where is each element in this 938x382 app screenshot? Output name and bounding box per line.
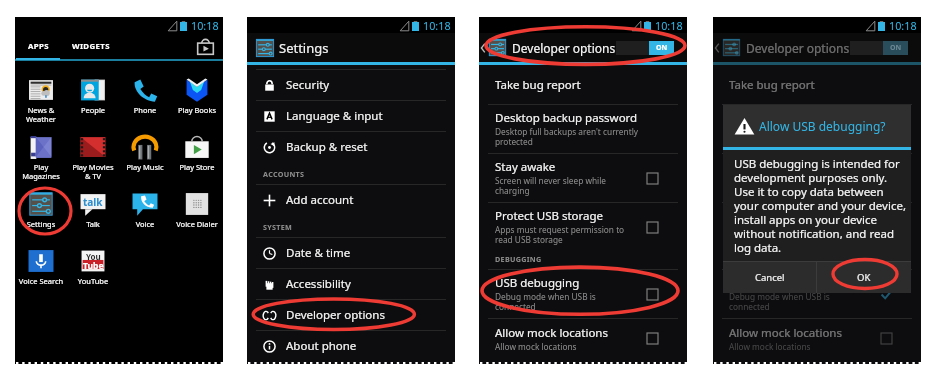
staticText: Developer options <box>746 40 850 56</box>
staticText: 10:18 <box>191 18 219 33</box>
button[interactable]: checkbox <box>881 289 892 300</box>
button[interactable]: Allow mock locations <box>479 319 687 358</box>
staticText: Tube <box>83 260 104 272</box>
button[interactable]: Accessibility <box>247 269 455 299</box>
staticText: 10:18 <box>655 18 683 33</box>
staticText: Desktop backup password <box>729 110 872 126</box>
button[interactable]: checkbox <box>647 289 658 300</box>
button[interactable]: Back <box>713 33 921 62</box>
staticText: Settings <box>15 219 67 229</box>
staticText: Take bug report <box>729 77 815 93</box>
staticText: News & Weather <box>15 105 67 125</box>
staticText: Allow mock locations <box>729 325 842 341</box>
button[interactable]: You <box>67 232 119 289</box>
staticText: Play Magazines <box>15 162 67 182</box>
button[interactable]: USB debugging <box>713 270 921 318</box>
button[interactable]: checkbox <box>647 222 658 233</box>
button[interactable]: Allow mock locations <box>713 319 921 358</box>
button[interactable]: Voice <box>119 175 171 232</box>
staticText: You <box>86 251 101 262</box>
button[interactable]: Back <box>713 33 721 62</box>
button[interactable]: Settings <box>15 175 67 232</box>
button[interactable]: Play Movies & TV <box>67 118 119 175</box>
staticText: USB debugging is intended for developmen… <box>734 156 909 255</box>
staticText: Debug mode when USB is connected <box>495 291 638 313</box>
button[interactable]: Play Books <box>171 61 223 118</box>
staticText: Play Books <box>171 105 223 115</box>
button[interactable]: Take bug report <box>713 65 921 104</box>
button[interactable]: talk <box>67 175 119 232</box>
button[interactable]: Add account <box>247 185 455 215</box>
staticText: Developer options <box>286 307 385 323</box>
button[interactable]: Voice Search <box>15 232 67 289</box>
button[interactable]: News & Weather <box>15 61 67 118</box>
staticText: Stay awake <box>495 159 556 175</box>
staticText: Add account <box>286 192 354 208</box>
button[interactable]: Desktop backup password <box>479 105 687 153</box>
button[interactable]: WIDGETS <box>61 33 120 59</box>
staticText: Talk <box>67 219 119 229</box>
staticText: 10:18 <box>423 18 451 33</box>
button[interactable]: Language & input <box>247 101 455 131</box>
button[interactable]: checkbox <box>881 222 892 233</box>
staticText: Play Music <box>119 162 171 172</box>
button[interactable]: About phone <box>247 331 455 361</box>
button[interactable]: Stay awake <box>713 154 921 202</box>
staticText: Allow mock locations <box>495 341 577 352</box>
button[interactable]: Back <box>479 33 487 62</box>
staticText: Screen will never sleep while charging <box>729 175 872 197</box>
button[interactable]: Phone <box>119 61 171 118</box>
button[interactable]: Toggle developer options <box>616 41 674 55</box>
staticText: People <box>67 105 119 115</box>
staticText: talk <box>83 195 103 209</box>
button[interactable]: People <box>67 61 119 118</box>
button[interactable]: USB debugging <box>479 270 687 318</box>
staticText: Backup & reset <box>286 139 368 155</box>
staticText: 10:18 <box>889 18 917 33</box>
button[interactable]: Toggle developer options <box>850 41 908 55</box>
staticText: ACCOUNTS <box>263 169 305 179</box>
button[interactable]: Voice Dialer <box>171 175 223 232</box>
staticText: Date & time <box>286 245 351 261</box>
staticText: USB debugging <box>729 275 814 291</box>
button[interactable]: Settings <box>247 33 455 62</box>
staticText: Language & input <box>286 108 383 124</box>
staticText: Cancel <box>755 271 785 284</box>
button[interactable]: checkbox <box>647 173 658 184</box>
button[interactable]: Stay awake <box>479 154 687 202</box>
button[interactable]: OK <box>817 262 911 293</box>
staticText: Apps must request permission to read USB… <box>729 224 872 246</box>
staticText: Voice Search <box>15 276 67 286</box>
staticText: Allow mock locations <box>495 325 608 341</box>
button[interactable]: Play Music <box>119 118 171 175</box>
button[interactable]: Date & time <box>247 238 455 268</box>
staticText: DEBUGGING <box>729 254 776 264</box>
button[interactable]: APPS <box>15 33 61 59</box>
button[interactable]: checkbox <box>881 333 892 344</box>
staticText: Allow USB debugging? <box>759 118 886 134</box>
staticText: Accessibility <box>286 276 351 292</box>
button[interactable]: Security <box>247 70 455 100</box>
button[interactable]: Play Magazines <box>15 118 67 175</box>
staticText: Developer options <box>512 40 616 56</box>
staticText: Take bug report <box>495 77 581 93</box>
staticText: Play Store <box>171 162 223 172</box>
button[interactable]: Cancel <box>723 262 816 293</box>
button[interactable]: checkbox <box>881 173 892 184</box>
staticText: Voice Dialer <box>171 219 223 229</box>
staticText: Protect USB storage <box>729 208 838 224</box>
button[interactable]: Protect USB storage <box>479 203 687 251</box>
button[interactable]: checkbox <box>647 333 658 344</box>
button[interactable]: Take bug report <box>479 65 687 104</box>
button[interactable]: Desktop backup password <box>713 105 921 153</box>
staticText: USB debugging <box>495 275 580 291</box>
staticText: APPS <box>28 41 49 52</box>
button[interactable]: Protect USB storage <box>713 203 921 251</box>
button[interactable]: Back <box>479 33 687 62</box>
staticText: Settings <box>279 39 329 57</box>
button[interactable]: Play Store <box>192 33 218 59</box>
button[interactable]: Play Store <box>171 118 223 175</box>
button[interactable]: Backup & reset <box>247 132 455 162</box>
staticText: Play Movies & TV <box>67 162 119 182</box>
button[interactable]: Developer options <box>247 300 455 330</box>
